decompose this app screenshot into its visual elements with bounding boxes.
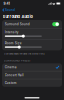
button[interactable]: Concert Hall: [2, 71, 62, 79]
staticText: Room Size: [5, 41, 22, 45]
button[interactable]: Custom: [2, 79, 62, 87]
staticText: Surround Sound: [5, 22, 30, 26]
staticText: Cinema: [5, 65, 17, 69]
staticText: SURROUND PRESET: [4, 59, 31, 62]
button[interactable]: Surround Sound: [2, 20, 62, 28]
staticText: Concert Hall: [5, 73, 24, 77]
staticText: 9:41: [3, 2, 9, 5]
staticText: Surround audio widens the stereo field.: [4, 52, 45, 55]
staticText: Surround Audio: [3, 14, 33, 19]
button[interactable]: Cinema: [2, 63, 62, 71]
staticText: Intensity: [5, 30, 19, 34]
staticText: Custom: [5, 81, 17, 85]
staticText: Sound: [5, 8, 15, 12]
button[interactable]: Back to Sound: [2, 7, 15, 13]
